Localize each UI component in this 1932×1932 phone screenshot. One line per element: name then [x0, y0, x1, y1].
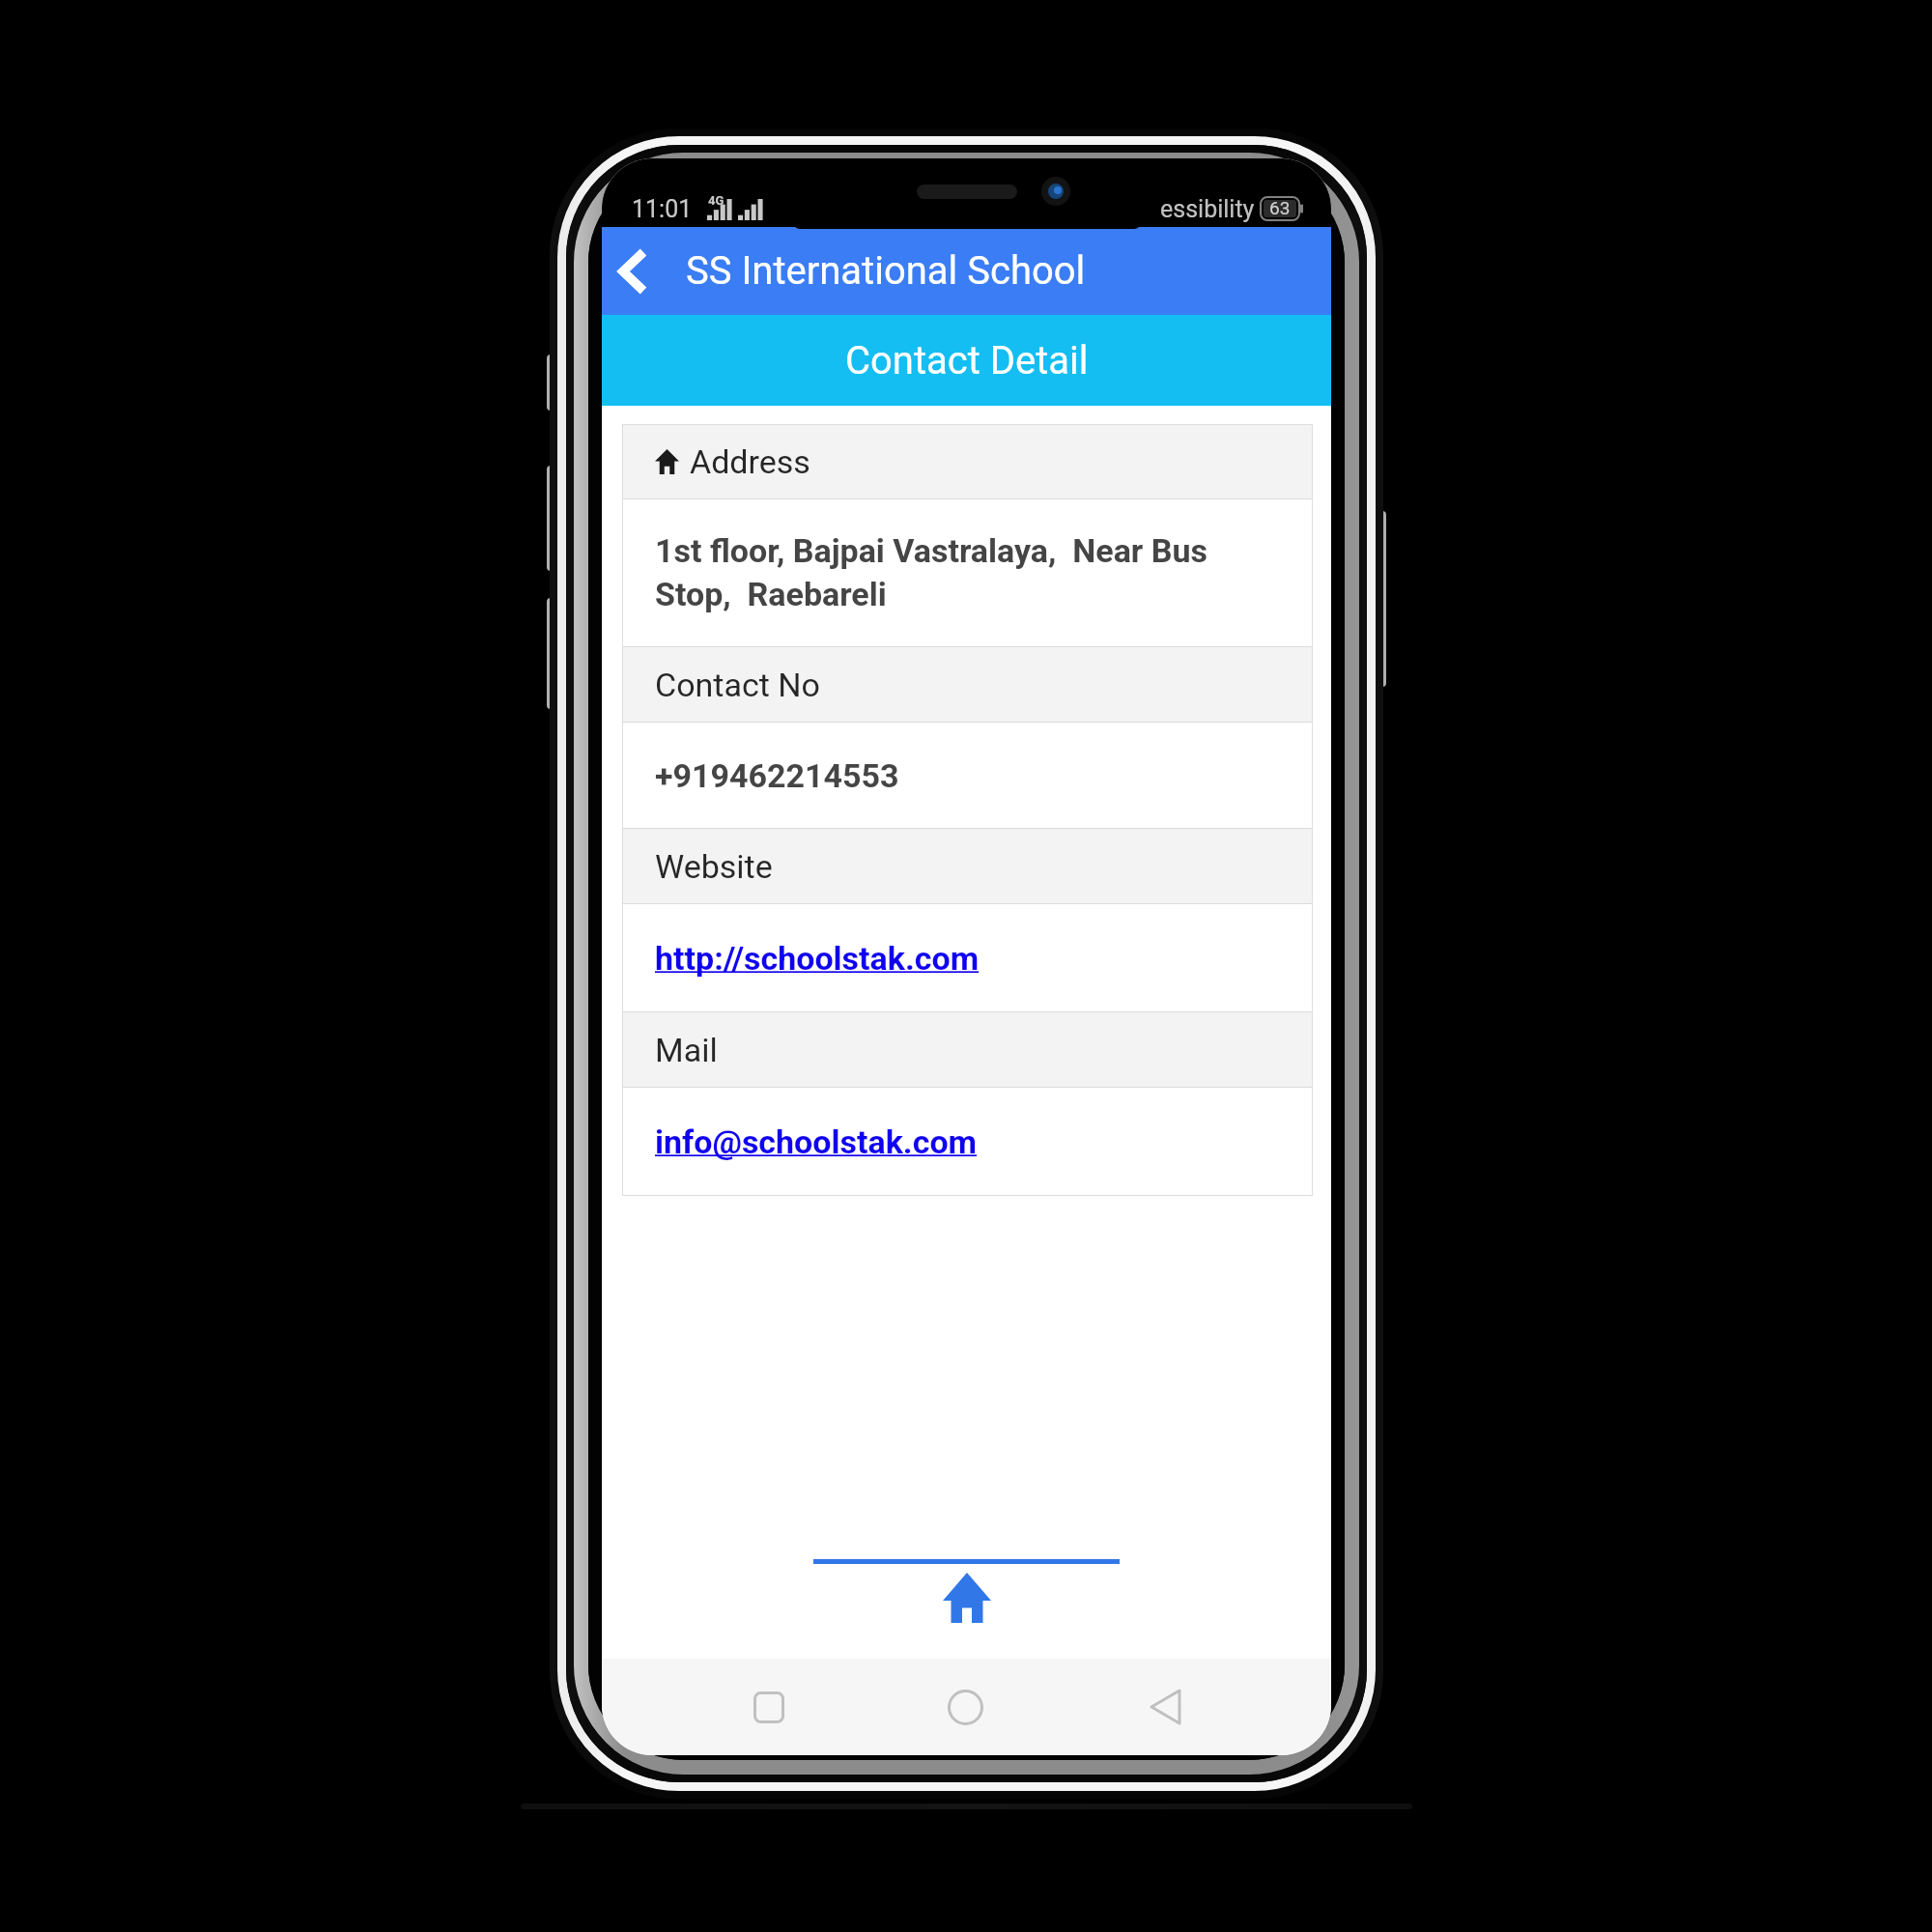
button[interactable]: Home — [907, 1659, 1023, 1755]
button[interactable]: Home — [928, 1573, 1006, 1623]
staticText: SS International School — [686, 248, 1086, 294]
button[interactable]: +919462214553 — [622, 723, 1313, 828]
staticText: essibility — [1160, 195, 1255, 223]
button[interactable]: http://schoolstak.com — [622, 904, 1313, 1011]
button[interactable]: Address — [622, 424, 1313, 498]
staticText: Website — [655, 847, 773, 886]
staticText: info@schoolstak.com — [655, 1122, 978, 1161]
button[interactable]: 1st floor, Bajpai Vastralaya, Near Bus S… — [622, 499, 1313, 646]
button[interactable]: Recent apps — [711, 1659, 827, 1755]
staticText: +919462214553 — [655, 756, 899, 795]
staticText: Contact No — [655, 666, 820, 704]
staticText: 11:01 — [632, 195, 693, 223]
button[interactable]: Back — [602, 227, 665, 315]
button[interactable]: Back — [1107, 1659, 1223, 1755]
button[interactable]: info@schoolstak.com — [622, 1088, 1313, 1196]
staticText: 4G — [708, 193, 724, 208]
staticText: Address — [690, 442, 810, 481]
staticText: 63 — [1269, 197, 1291, 218]
button[interactable]: Website — [622, 829, 1313, 903]
staticText: 1st floor, Bajpai Vastralaya, Near Bus S… — [655, 531, 1207, 614]
staticText: Contact Detail — [845, 338, 1089, 384]
staticText: http://schoolstak.com — [655, 939, 980, 978]
button[interactable]: Contact No — [622, 647, 1313, 722]
button[interactable]: Mail — [622, 1012, 1313, 1087]
staticText: Mail — [655, 1031, 718, 1069]
